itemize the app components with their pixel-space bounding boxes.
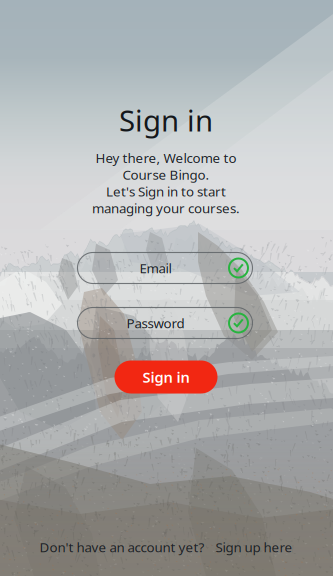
staticText: managing your courses. — [92, 199, 240, 217]
staticText: Password — [126, 314, 184, 332]
staticText: Let's Sign in to start — [106, 182, 226, 200]
button[interactable]: Password — [77, 307, 252, 338]
staticText: Email — [139, 259, 171, 277]
staticText: Sign up here — [215, 538, 292, 556]
staticText: Sign in — [119, 100, 213, 139]
staticText: Sign in — [142, 367, 189, 387]
button[interactable]: Email — [77, 252, 252, 283]
staticText: Don't have an account yet? — [39, 538, 204, 556]
staticText: Hey there, Welcome to — [95, 149, 236, 167]
button[interactable]: Sign in — [114, 360, 217, 393]
button[interactable]: Sign up here — [215, 538, 292, 556]
staticText: Course Bingo. — [122, 166, 209, 183]
